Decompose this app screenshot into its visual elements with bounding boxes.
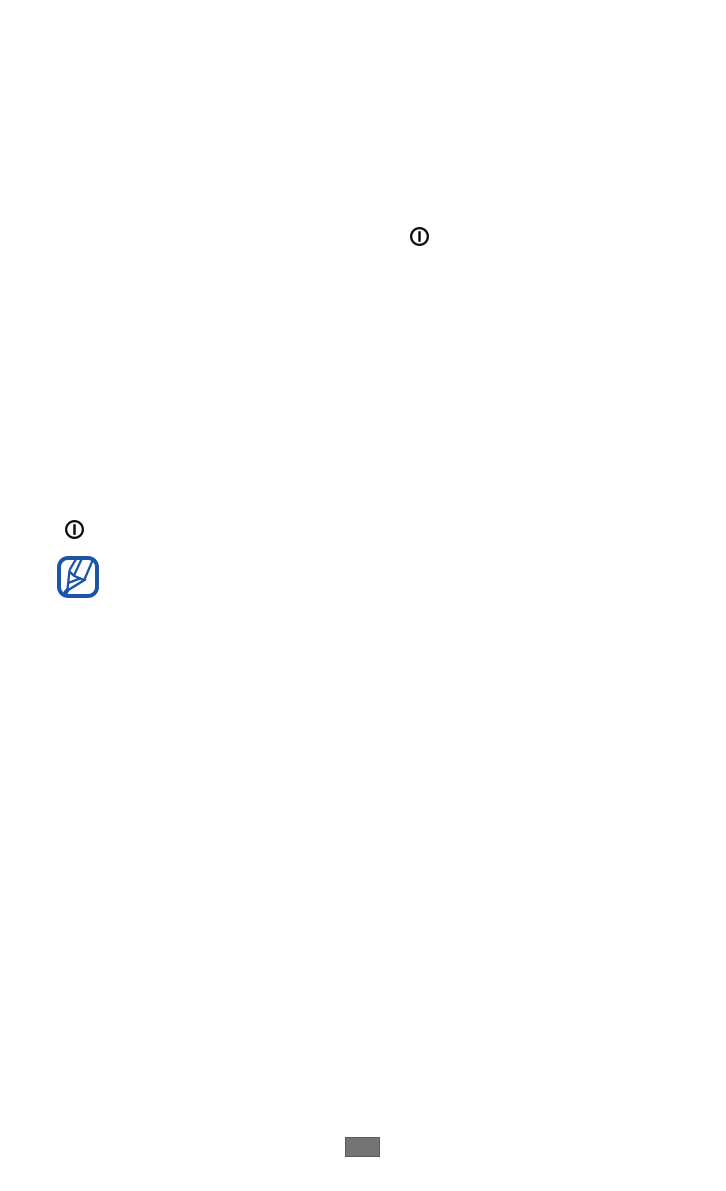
- button[interactable]: Note: [410, 227, 429, 246]
- button[interactable]: Note: [65, 520, 84, 539]
- button[interactable]: S Pen: [57, 556, 99, 598]
